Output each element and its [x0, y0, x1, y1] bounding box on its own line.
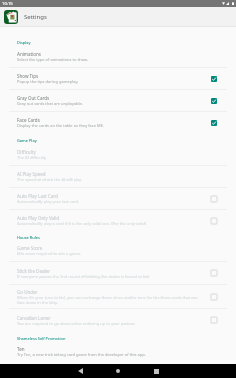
button[interactable]: Home [99, 364, 137, 378]
staticText: Stick the Dealer [17, 268, 51, 274]
button[interactable]: Go Under [9, 285, 227, 309]
staticText: Settings [24, 13, 47, 21]
staticText: Auto Play Only Valid [17, 215, 60, 221]
staticText: Canadian Loner [17, 315, 51, 321]
button[interactable]: Ten [9, 341, 227, 363]
staticText: When it's your turn to bid, you can exch… [17, 295, 205, 305]
button[interactable]: Difficulty [9, 144, 227, 166]
staticText: Game Play [17, 138, 37, 143]
button[interactable]: Recent apps [137, 364, 175, 378]
button[interactable]: Gray Out Cards [9, 90, 227, 112]
staticText: If everyone passes the 2nd round of bidd… [17, 274, 150, 279]
button[interactable]: Game Score [9, 240, 227, 262]
button[interactable]: Stick the Dealer [9, 262, 227, 285]
staticText: Popup the tips during gameplay. [17, 79, 79, 84]
button[interactable]: Show Tips [9, 68, 227, 90]
button[interactable]: AI Play Speed [9, 166, 227, 188]
button[interactable]: Auto Play Last Card [9, 188, 227, 210]
staticText: 10:15 [2, 1, 13, 7]
staticText: Try Ten, a new trick taking card game fr… [17, 352, 146, 357]
staticText: Automatically play your last card. [17, 199, 80, 204]
staticText: The speed at which the AI will play [17, 177, 82, 182]
staticText: Go Under [17, 289, 38, 295]
staticText: Animations [17, 51, 41, 57]
button[interactable]: Canadian Loner [9, 309, 227, 332]
staticText: You are required to go alone when orderi… [17, 321, 136, 326]
staticText: Face Cards [17, 117, 40, 123]
button[interactable]: Face Cards [9, 112, 227, 134]
staticText: Ten [17, 346, 25, 352]
staticText: Automatically play a card if it is the o… [17, 221, 146, 226]
staticText: Game Score [17, 245, 43, 251]
staticText: Difficulty [17, 149, 36, 155]
staticText: Select the type of animations to show. [17, 57, 89, 62]
button[interactable]: Animations [9, 46, 227, 68]
staticText: Gray Out Cards [17, 95, 50, 101]
staticText: Show Tips [17, 73, 39, 79]
staticText: Display the cards on the table so they f… [17, 123, 104, 128]
staticText: Display [17, 40, 31, 45]
staticText: Min score required to win a game. [17, 251, 82, 256]
staticText: AI Play Speed [17, 171, 46, 177]
staticText: The AI difficulty [17, 155, 47, 160]
staticText: Auto Play Last Card [17, 193, 58, 199]
staticText: Gray out cards that are unplayable. [17, 101, 83, 106]
button[interactable]: Back [61, 364, 99, 378]
button[interactable]: Auto Play Only Valid [9, 210, 227, 232]
staticText: House Rules [17, 235, 40, 240]
staticText: Shameless Self Promotion [17, 336, 66, 341]
